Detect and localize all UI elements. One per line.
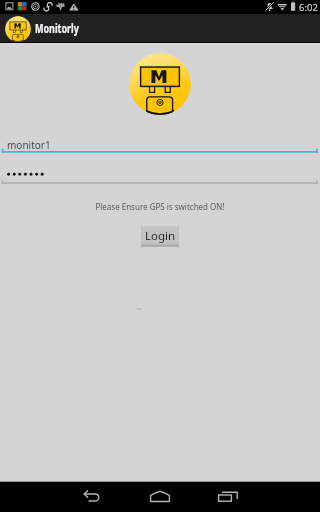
staticText: Login bbox=[145, 228, 176, 244]
button[interactable]: Login bbox=[141, 226, 179, 247]
staticText: monitor1 bbox=[7, 138, 51, 152]
staticText: Please Ensure GPS is switched ON! bbox=[0, 201, 320, 212]
button[interactable]: Home bbox=[126, 481, 194, 512]
button[interactable]: Back bbox=[58, 481, 126, 512]
staticText: Monitorly bbox=[35, 21, 79, 37]
button[interactable]: Recents bbox=[194, 481, 262, 512]
staticText: 6:02 bbox=[299, 1, 318, 14]
